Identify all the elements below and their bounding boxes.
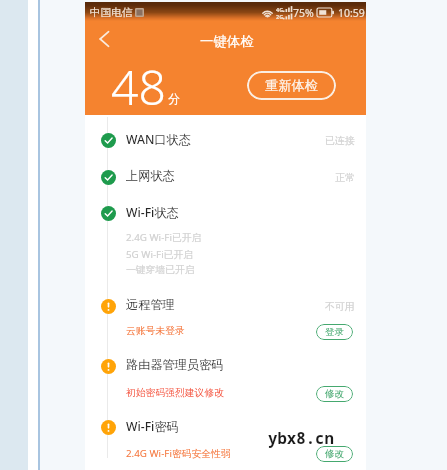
staticText: Wi-Fi密码 bbox=[126, 418, 179, 435]
button[interactable] bbox=[85, 196, 366, 230]
button[interactable] bbox=[85, 411, 366, 445]
staticText: 远程管理 bbox=[126, 297, 175, 312]
button[interactable]: 修改 bbox=[316, 386, 353, 402]
staticText: 10:59 bbox=[338, 6, 365, 20]
staticText: 中国电信 bbox=[90, 6, 133, 19]
staticText: 修改 bbox=[325, 388, 344, 400]
staticText: 上网状态 bbox=[126, 168, 175, 183]
staticText: 重新体检 bbox=[265, 77, 318, 94]
staticText: 75% bbox=[293, 6, 314, 20]
staticText: 2.4G Wi-Fi已开启 bbox=[126, 231, 202, 244]
button[interactable]: Back bbox=[87, 22, 121, 56]
staticText: 一键体检 bbox=[200, 33, 254, 50]
button[interactable]: 重新体检 bbox=[247, 71, 336, 100]
staticText: 登录 bbox=[325, 326, 344, 338]
staticText: Wi-Fi状态 bbox=[126, 204, 179, 221]
button[interactable]: 修改 bbox=[316, 446, 353, 462]
staticText: 云账号未登录 bbox=[126, 325, 185, 337]
staticText: 修改 bbox=[325, 448, 344, 460]
staticText: 2.4G Wi-Fi密码安全性弱 bbox=[126, 447, 231, 460]
button[interactable] bbox=[85, 124, 366, 158]
button[interactable] bbox=[85, 349, 366, 383]
button[interactable] bbox=[85, 289, 366, 323]
staticText: 初始密码强烈建议修改 bbox=[126, 387, 224, 399]
staticText: 48 bbox=[111, 54, 166, 119]
staticText: 2G bbox=[276, 13, 284, 20]
staticText: ybx8.cn bbox=[268, 427, 334, 448]
staticText: 4G bbox=[276, 6, 284, 13]
staticText: 已连接 bbox=[325, 134, 355, 146]
staticText: 不可用 bbox=[325, 300, 355, 312]
staticText: 5G Wi-Fi已开启 bbox=[126, 248, 194, 261]
staticText: 正常 bbox=[335, 171, 355, 183]
button[interactable]: 登录 bbox=[316, 324, 353, 340]
button[interactable] bbox=[85, 160, 366, 194]
staticText: WAN口状态 bbox=[126, 131, 191, 148]
staticText: 分 bbox=[168, 91, 180, 106]
staticText: 一键穿墙已开启 bbox=[126, 264, 195, 276]
staticText: 路由器管理员密码 bbox=[126, 357, 224, 372]
